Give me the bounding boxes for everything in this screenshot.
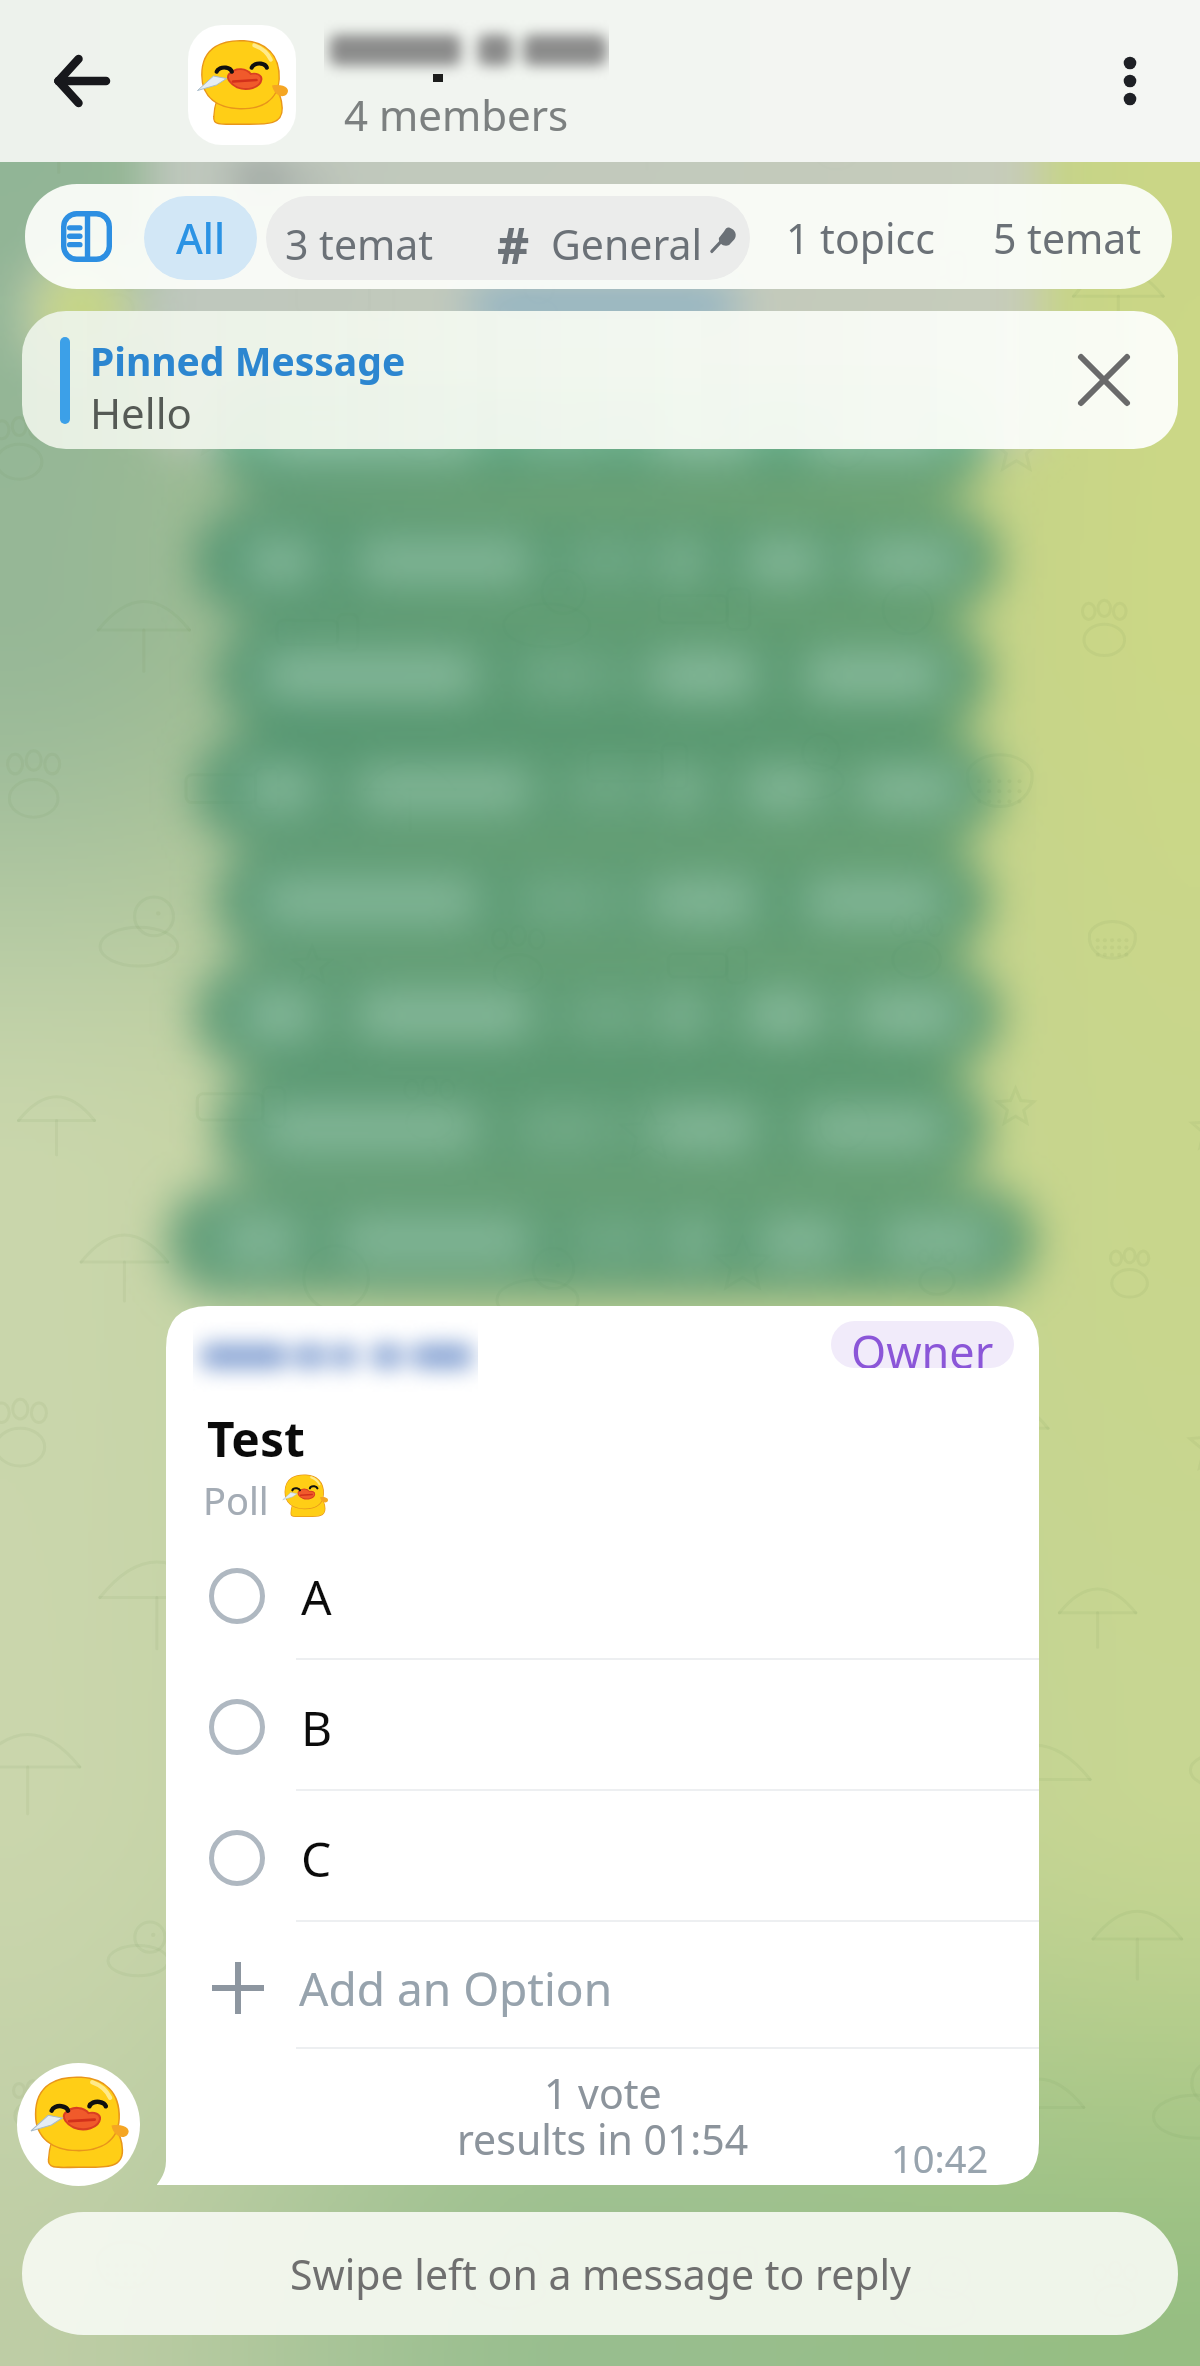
staticText: All: [176, 210, 225, 266]
button[interactable]: Close pinned message: [1070, 346, 1138, 414]
staticText: B: [301, 1695, 333, 1760]
staticText: 10:42: [891, 2132, 989, 2184]
staticText: 5 temat: [993, 210, 1142, 266]
staticText: Owner: [851, 1321, 994, 1368]
button[interactable]: A: [166, 1541, 1039, 1651]
staticText: 4 members: [344, 86, 569, 143]
staticText: #: [497, 211, 530, 279]
staticText: results in 01:54: [457, 2111, 749, 2167]
button[interactable]: 5 temat: [972, 196, 1162, 280]
button[interactable]: Swipe left on a message to reply: [22, 2212, 1178, 2335]
button[interactable]: 3 temat: [266, 196, 492, 280]
button[interactable]: 1 topicc: [758, 196, 962, 280]
button[interactable]: More options: [1082, 33, 1178, 129]
staticText: 1 topicc: [786, 210, 935, 266]
button[interactable]: Owner: [831, 1321, 1014, 1368]
button[interactable]: Add an Option: [166, 1933, 1039, 2043]
staticText: Poll: [203, 1474, 269, 1526]
button[interactable]: C: [166, 1803, 1039, 1913]
staticText: Test: [207, 1406, 305, 1471]
button[interactable]: Sender avatar: [17, 2063, 140, 2186]
button[interactable]: All: [144, 196, 257, 280]
staticText: A: [301, 1564, 332, 1629]
staticText: Pinned Message: [90, 334, 406, 387]
button[interactable]: Pinned Message: [22, 311, 1178, 449]
button[interactable]: B: [166, 1672, 1039, 1782]
staticText: C: [301, 1826, 332, 1891]
button[interactable]: Topics layout: [61, 211, 112, 262]
staticText: Add an Option: [299, 1957, 613, 2020]
staticText: 1 vote: [544, 2065, 662, 2121]
staticText: Swipe left on a message to reply: [290, 2246, 911, 2302]
staticText: General: [551, 216, 703, 272]
staticText: Hello: [90, 384, 192, 441]
staticText: 3 temat: [285, 216, 434, 272]
button[interactable]: Group avatar: [188, 25, 296, 145]
button[interactable]: Back: [33, 33, 129, 129]
button[interactable]: #: [492, 196, 750, 280]
